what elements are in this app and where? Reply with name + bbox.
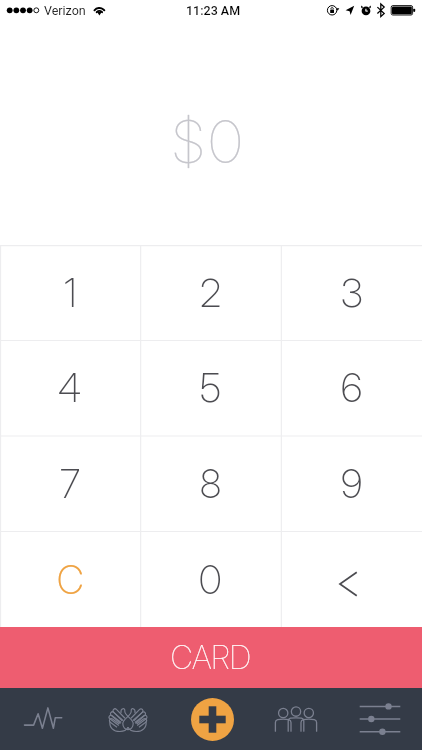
staticText: CARD	[171, 638, 251, 677]
staticText: 7	[60, 460, 81, 507]
button[interactable]: 9	[281, 435, 422, 531]
button[interactable]: 6	[281, 340, 422, 435]
staticText: 8	[200, 460, 222, 507]
staticText: 11:23 AM	[186, 3, 241, 18]
button[interactable]: 0	[140, 531, 281, 627]
staticText: 5	[200, 364, 221, 411]
staticText: 2	[200, 269, 222, 316]
staticText: 1	[64, 269, 77, 316]
staticText: $0	[172, 106, 247, 177]
button[interactable]: CARD	[0, 627, 422, 688]
button[interactable]: Donate	[85, 688, 170, 750]
button[interactable]: C	[0, 531, 140, 627]
button[interactable]: 2	[140, 245, 281, 340]
button[interactable]: 8	[140, 435, 281, 531]
other: Backspace	[332, 564, 372, 604]
staticText: Verizon	[44, 3, 86, 18]
button[interactable]: 1	[0, 245, 140, 340]
staticText: 4	[58, 364, 82, 411]
button[interactable]: Settings	[338, 688, 422, 750]
button[interactable]: 5	[140, 340, 281, 435]
staticText: 6	[341, 364, 363, 411]
staticText: 0	[199, 556, 222, 603]
button[interactable]: 4	[0, 340, 140, 435]
button[interactable]: 3	[281, 245, 422, 340]
button[interactable]: People	[254, 688, 338, 750]
staticText: 3	[341, 269, 363, 316]
staticText: C	[57, 556, 84, 603]
button[interactable]: 7	[0, 435, 140, 531]
staticText: 9	[341, 460, 363, 507]
button[interactable]: Activity	[0, 688, 85, 750]
button[interactable]: Add	[170, 688, 254, 750]
button[interactable]: Backspace	[281, 531, 422, 627]
